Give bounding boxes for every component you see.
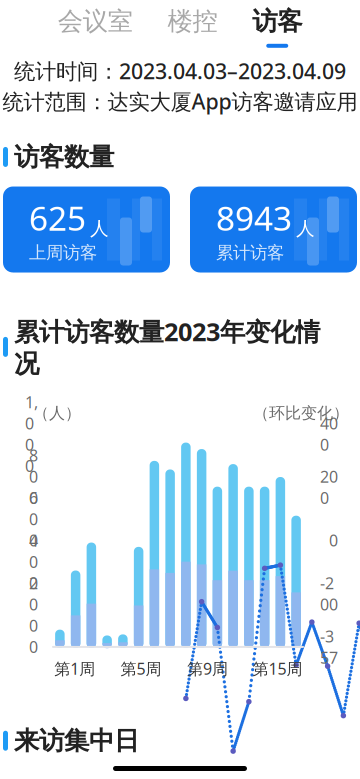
- button[interactable]: 楼控: [161, 6, 223, 48]
- staticText: 600: [29, 487, 38, 551]
- button[interactable]: 访客: [246, 6, 308, 48]
- staticText: 0: [29, 636, 38, 657]
- staticText: 200: [29, 572, 38, 636]
- staticText: 访客数量: [14, 141, 114, 172]
- staticText: 第15周: [252, 658, 302, 679]
- staticText: 800: [29, 445, 38, 508]
- staticText: 楼控: [167, 6, 217, 37]
- staticText: 上周访客: [29, 242, 97, 263]
- staticText: 人: [296, 217, 315, 240]
- staticText: -200: [320, 572, 338, 615]
- staticText: 1,000: [25, 391, 38, 476]
- staticText: 累计访客: [216, 242, 284, 263]
- staticText: 统计范围：达实大厦App访客邀请应用: [2, 87, 357, 115]
- staticText: -357: [320, 626, 338, 668]
- staticText: 0: [329, 530, 338, 551]
- button[interactable]: 625: [3, 186, 170, 272]
- staticText: 第5周: [120, 658, 161, 679]
- staticText: 统计时间：2023.04.03–2023.04.09: [14, 57, 346, 85]
- staticText: （环比变化）: [253, 403, 349, 423]
- staticText: 第9周: [187, 658, 228, 679]
- staticText: 8943: [216, 196, 292, 240]
- staticText: 200: [320, 466, 338, 508]
- staticText: 400: [29, 530, 38, 593]
- staticText: 人: [90, 217, 109, 240]
- staticText: 会议室: [58, 6, 133, 37]
- staticText: 访客: [252, 6, 302, 37]
- staticText: （人）: [33, 403, 81, 423]
- staticText: 第1周: [54, 658, 95, 679]
- staticText: 来访集中日: [14, 725, 139, 756]
- staticText: 400: [320, 413, 338, 455]
- staticText: 625: [29, 196, 86, 240]
- button[interactable]: 会议室: [52, 6, 139, 48]
- staticText: 累计访客数量2023年变化情况: [14, 314, 320, 379]
- button[interactable]: 8943: [190, 186, 357, 272]
